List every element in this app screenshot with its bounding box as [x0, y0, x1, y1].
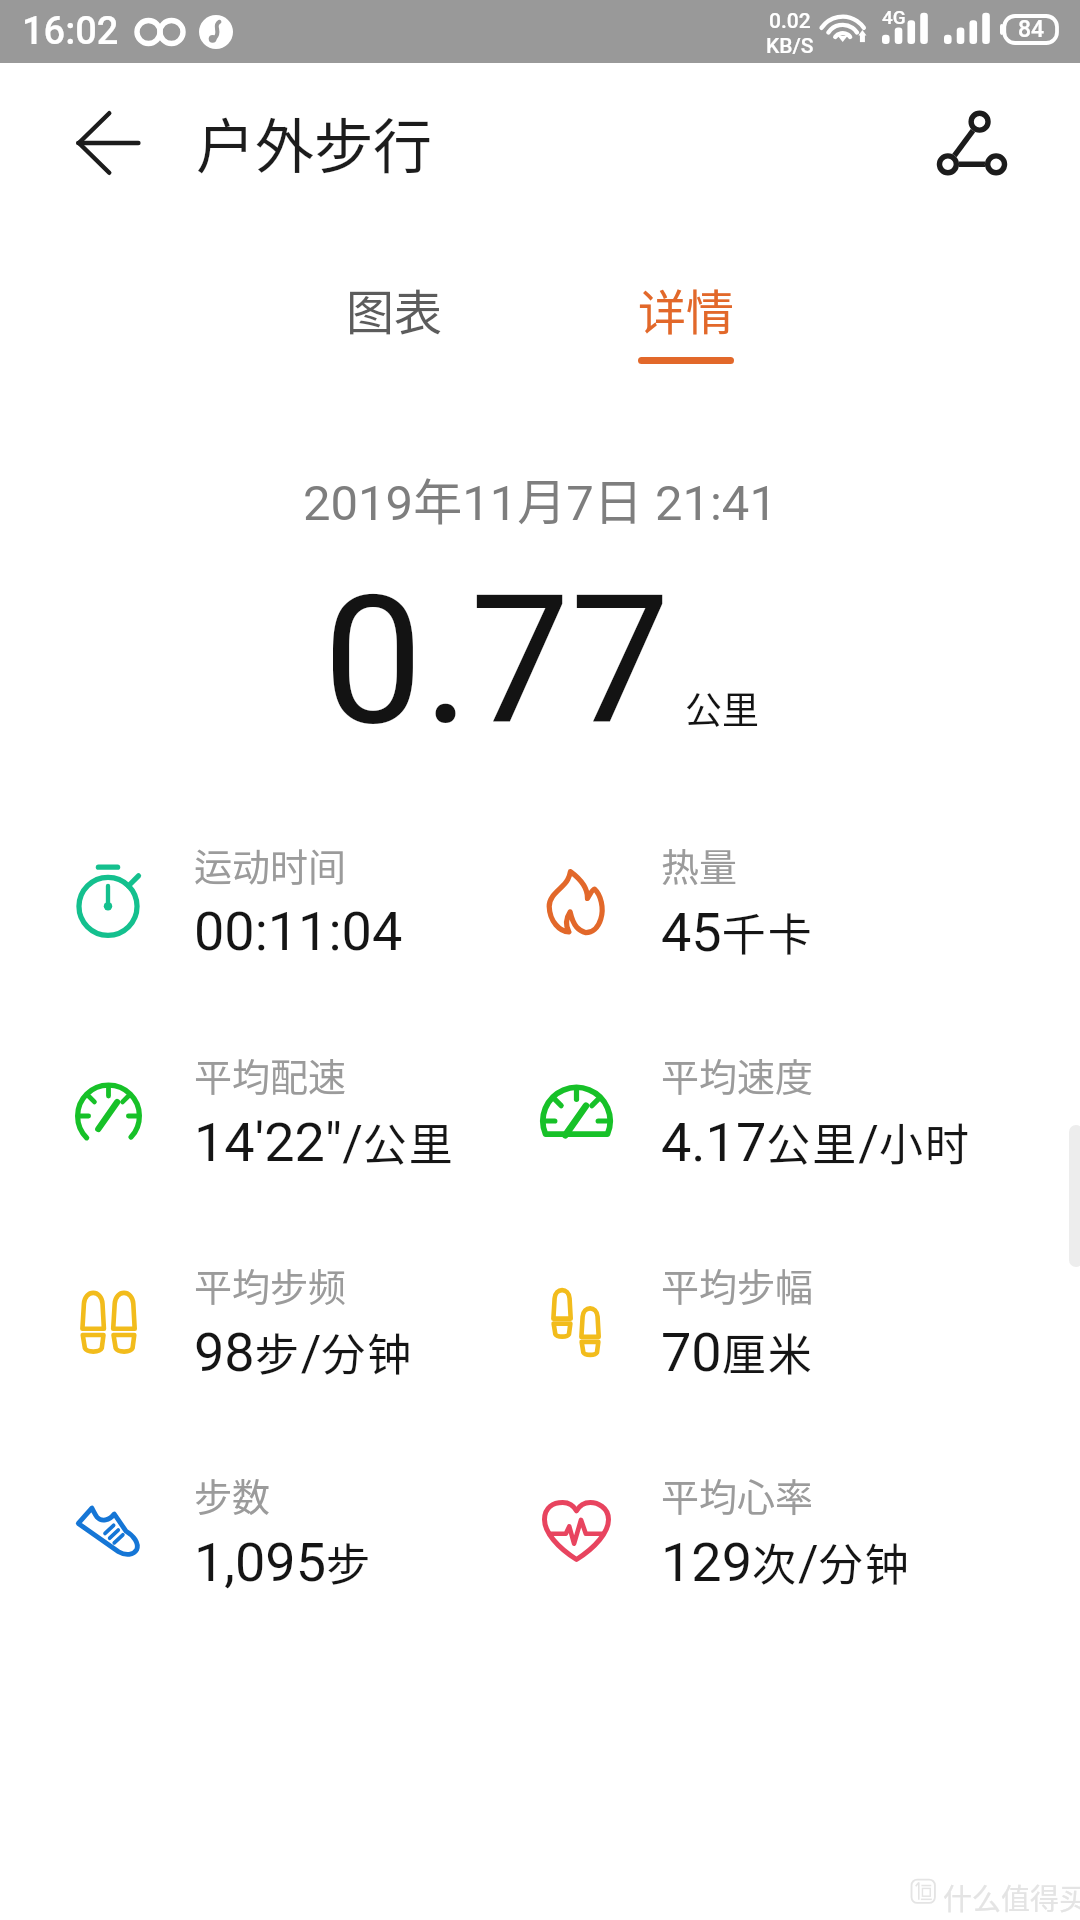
staticText: 4G [882, 6, 906, 28]
staticText: 步数 [194, 1467, 271, 1522]
staticText: 1,095步 [194, 1530, 373, 1594]
button[interactable]: 平均心率 [520, 1453, 950, 1603]
staticText: 14'22"/公里 [194, 1110, 455, 1174]
button[interactable]: 详情 [540, 260, 832, 370]
staticText: 00:11:04 [194, 900, 403, 963]
button[interactable]: 热量 [520, 823, 950, 973]
staticText: 84 [1018, 16, 1045, 43]
staticText: 平均速度 [661, 1047, 814, 1102]
button[interactable]: 平均步频 [52, 1243, 482, 1393]
staticText: 45千卡 [661, 900, 814, 964]
staticText: 户外步行 [196, 100, 433, 185]
staticText: 平均步频 [194, 1257, 347, 1312]
staticText: 详情 [638, 274, 735, 344]
staticText: 平均心率 [661, 1467, 814, 1522]
button[interactable]: 平均配速 [52, 1033, 482, 1183]
button[interactable]: 运动时间 [52, 823, 482, 973]
button[interactable]: Back [56, 91, 160, 195]
button[interactable]: 步数 [52, 1453, 482, 1603]
button[interactable]: 图表 [248, 260, 540, 370]
staticText: 公里 [685, 681, 759, 735]
staticText: 4.17公里/小时 [661, 1110, 971, 1174]
button[interactable]: 平均速度 [520, 1033, 950, 1183]
staticText: 98步/分钟 [194, 1320, 414, 1384]
staticText: 图表 [346, 274, 443, 344]
staticText: 70厘米 [661, 1320, 814, 1384]
staticText: 什么值得买 [943, 1876, 1080, 1918]
staticText: 运动时间 [194, 837, 347, 892]
staticText: 2019年11月7日 21:41 [303, 463, 777, 534]
staticText: 平均步幅 [661, 1257, 814, 1312]
staticText: 16:02 [22, 9, 119, 54]
staticText: 平均配速 [194, 1047, 347, 1102]
staticText: 热量 [661, 837, 738, 892]
button[interactable]: 平均步幅 [520, 1243, 950, 1393]
staticText: 0.02 [769, 9, 811, 34]
staticText: 129次/分钟 [661, 1530, 911, 1594]
staticText: KB/S [766, 34, 814, 59]
staticText: 0.77 [323, 557, 671, 766]
button[interactable]: Share [920, 91, 1024, 195]
